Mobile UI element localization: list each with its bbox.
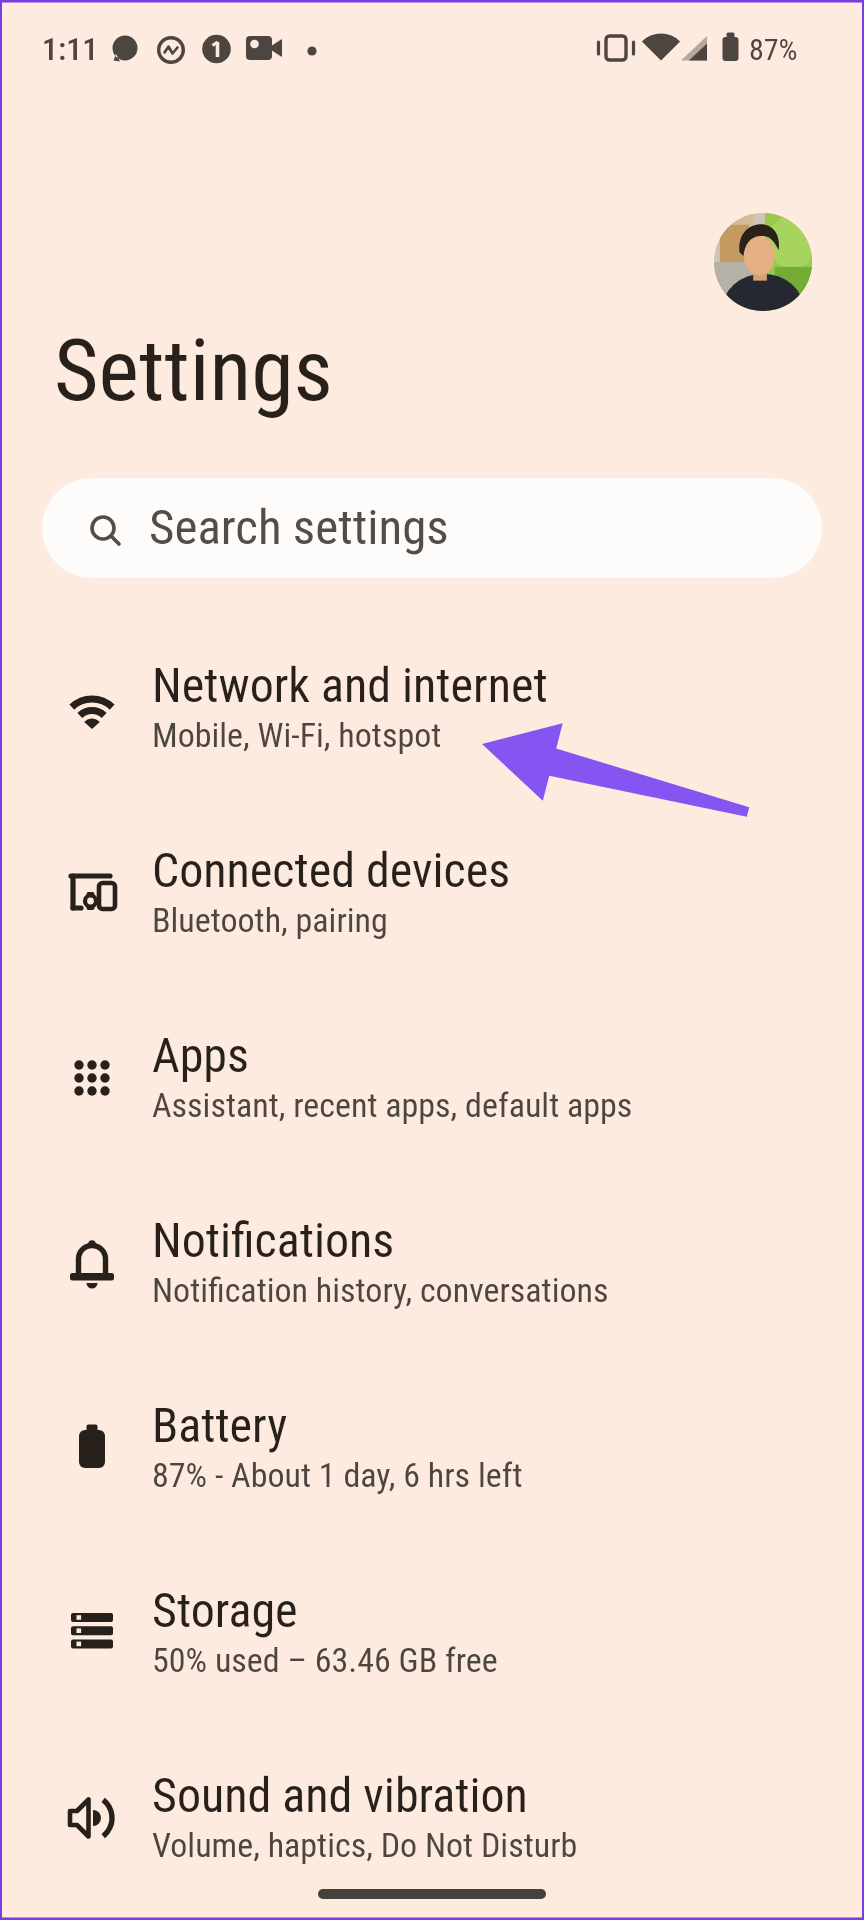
staticText: Volume, haptics, Do Not Disturb <box>152 1825 578 1865</box>
staticText: Settings <box>54 320 333 421</box>
button[interactable]: Battery <box>30 1360 834 1545</box>
staticText: Sound and vibration <box>152 1767 528 1823</box>
button[interactable]: Sound and vibration <box>30 1730 834 1915</box>
staticText: Network and internet <box>152 657 548 713</box>
staticText: 87% - About 1 day, 6 hrs left <box>152 1455 523 1495</box>
button[interactable] <box>714 213 812 311</box>
button[interactable]: Storage <box>30 1545 834 1730</box>
staticText: Storage <box>152 1582 298 1638</box>
button[interactable]: Search settings <box>42 478 822 578</box>
staticText: Connected devices <box>152 842 511 898</box>
button[interactable]: Apps <box>30 990 834 1175</box>
staticText: Apps <box>152 1027 249 1083</box>
staticText: Notifications <box>152 1212 395 1268</box>
button[interactable]: Notifications <box>30 1175 834 1360</box>
staticText: Assistant, recent apps, default apps <box>152 1085 633 1125</box>
staticText: Bluetooth, pairing <box>152 900 388 940</box>
staticText: Battery <box>152 1397 288 1453</box>
staticText: Notification history, conversations <box>152 1270 609 1310</box>
staticText: 1:11 <box>42 30 99 68</box>
staticText: Search settings <box>149 499 449 556</box>
staticText: 87% <box>749 32 798 67</box>
staticText: Mobile, Wi-Fi, hotspot <box>152 715 442 755</box>
button[interactable]: Network and internet <box>30 620 834 805</box>
staticText: 50% used – 63.46 GB free <box>152 1640 498 1680</box>
button[interactable]: Connected devices <box>30 805 834 990</box>
